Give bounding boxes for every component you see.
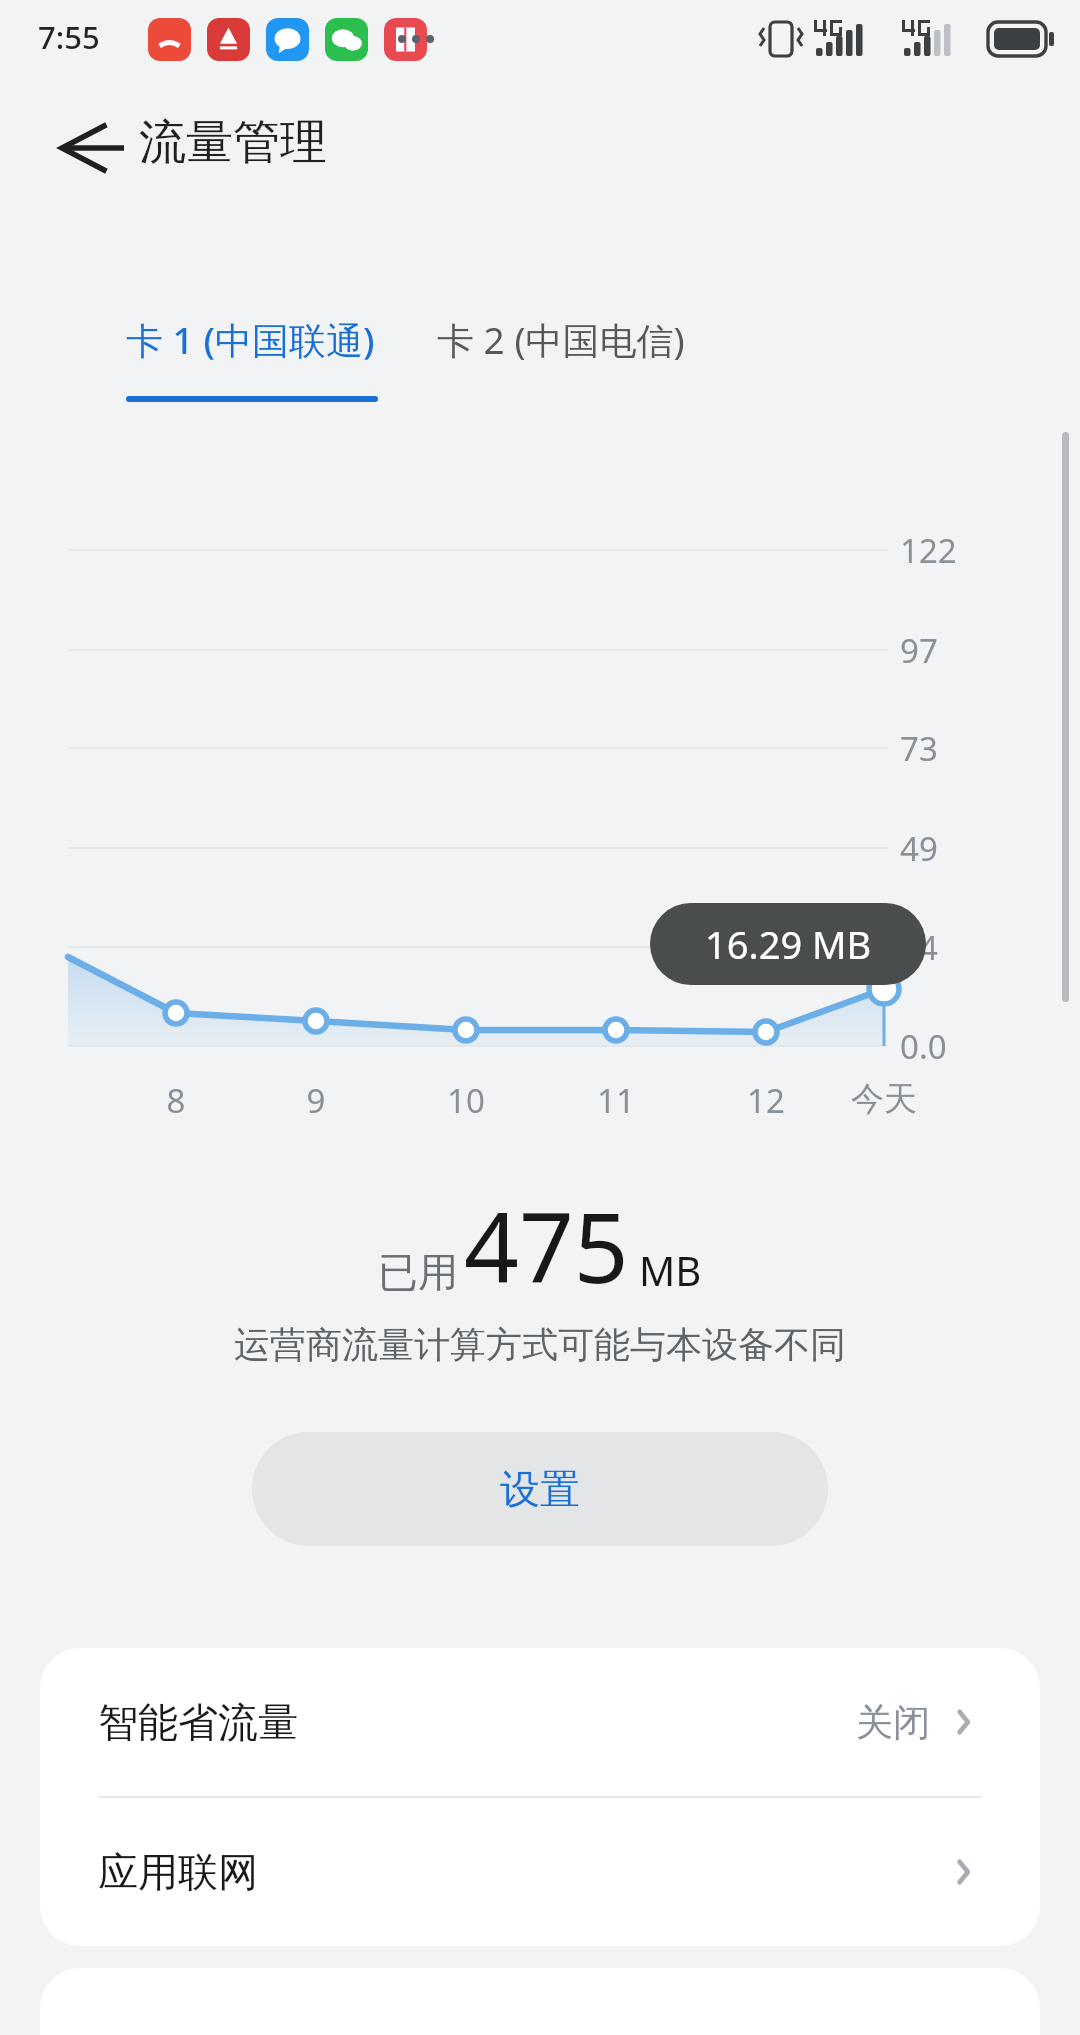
staticText: 关闭: [856, 1699, 930, 1746]
button[interactable]: 设置: [252, 1432, 828, 1546]
staticText: 9: [256, 1078, 376, 1123]
button[interactable]: 应用联网: [40, 1798, 1040, 1946]
staticText: 122: [900, 528, 957, 573]
button[interactable]: 卡 1 (中国联通): [126, 300, 416, 408]
staticText: 0.0: [900, 1024, 947, 1069]
staticText: 97: [900, 628, 938, 673]
staticText: MB: [639, 1243, 702, 1297]
staticText: 应用联网: [98, 1847, 258, 1897]
staticText: 设置: [500, 1464, 580, 1514]
staticText: 73: [900, 726, 938, 771]
button[interactable]: 智能省流量: [40, 1648, 1040, 1796]
button[interactable]: 卡 2 (中国电信): [437, 300, 707, 408]
staticText: 8: [116, 1078, 236, 1123]
staticText: 16.29 MB: [705, 918, 872, 970]
staticText: 7:55: [38, 16, 100, 58]
staticText: 智能省流量: [98, 1697, 298, 1747]
staticText: 12: [706, 1078, 826, 1123]
staticText: 475: [464, 1180, 629, 1311]
staticText: 24: [900, 925, 938, 970]
button[interactable]: Back: [38, 104, 126, 192]
staticText: 10: [406, 1078, 526, 1123]
staticText: 卡 1 (中国联通): [126, 314, 375, 365]
staticText: 运营商流量计算方式可能与本设备不同: [234, 1322, 846, 1367]
staticText: 已用: [378, 1247, 458, 1297]
staticText: 11: [556, 1078, 676, 1123]
staticText: 49: [900, 826, 938, 871]
staticText: 今天: [824, 1078, 944, 1120]
staticText: 流量管理: [139, 113, 327, 172]
staticText: 卡 2 (中国电信): [437, 314, 685, 365]
